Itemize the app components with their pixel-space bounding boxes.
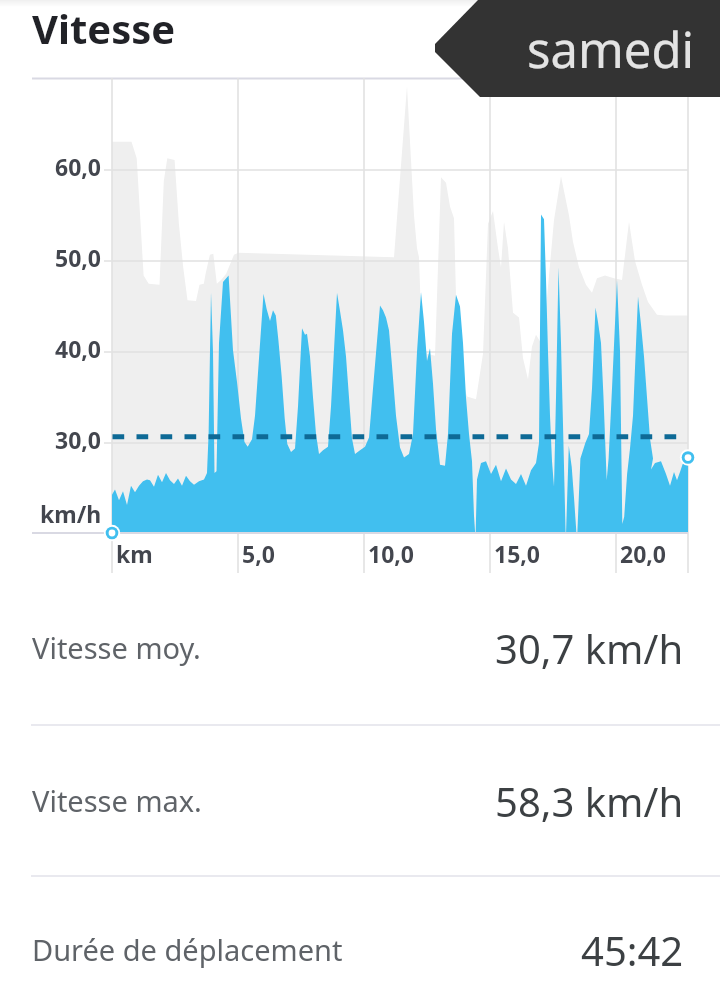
staticText: 58,3 km/h bbox=[495, 774, 684, 828]
button[interactable]: Vitesse moy. bbox=[0, 572, 720, 723]
staticText: Vitesse moy. bbox=[32, 628, 201, 667]
staticText: km bbox=[116, 538, 153, 569]
staticText: 15,0 bbox=[494, 538, 541, 569]
button[interactable]: Graphique de vitesse bbox=[0, 78, 720, 573]
staticText: km/h bbox=[40, 498, 102, 529]
button[interactable]: Vitesse max. bbox=[0, 725, 720, 876]
button[interactable]: samedi bbox=[435, 0, 720, 98]
staticText: 45:42 bbox=[581, 923, 684, 977]
button[interactable]: Durée de déplacement bbox=[0, 874, 720, 991]
staticText: Vitesse bbox=[32, 1, 176, 55]
staticText: 40,0 bbox=[55, 333, 102, 364]
staticText: 60,0 bbox=[55, 151, 102, 182]
staticText: 30,7 km/h bbox=[495, 621, 684, 675]
staticText: 10,0 bbox=[368, 538, 415, 569]
staticText: 20,0 bbox=[620, 538, 667, 569]
staticText: 50,0 bbox=[55, 242, 102, 273]
staticText: samedi bbox=[527, 16, 695, 83]
staticText: 5,0 bbox=[242, 538, 275, 569]
staticText: Durée de déplacement bbox=[32, 930, 343, 969]
staticText: 30,0 bbox=[55, 424, 102, 455]
staticText: Vitesse max. bbox=[32, 781, 202, 820]
